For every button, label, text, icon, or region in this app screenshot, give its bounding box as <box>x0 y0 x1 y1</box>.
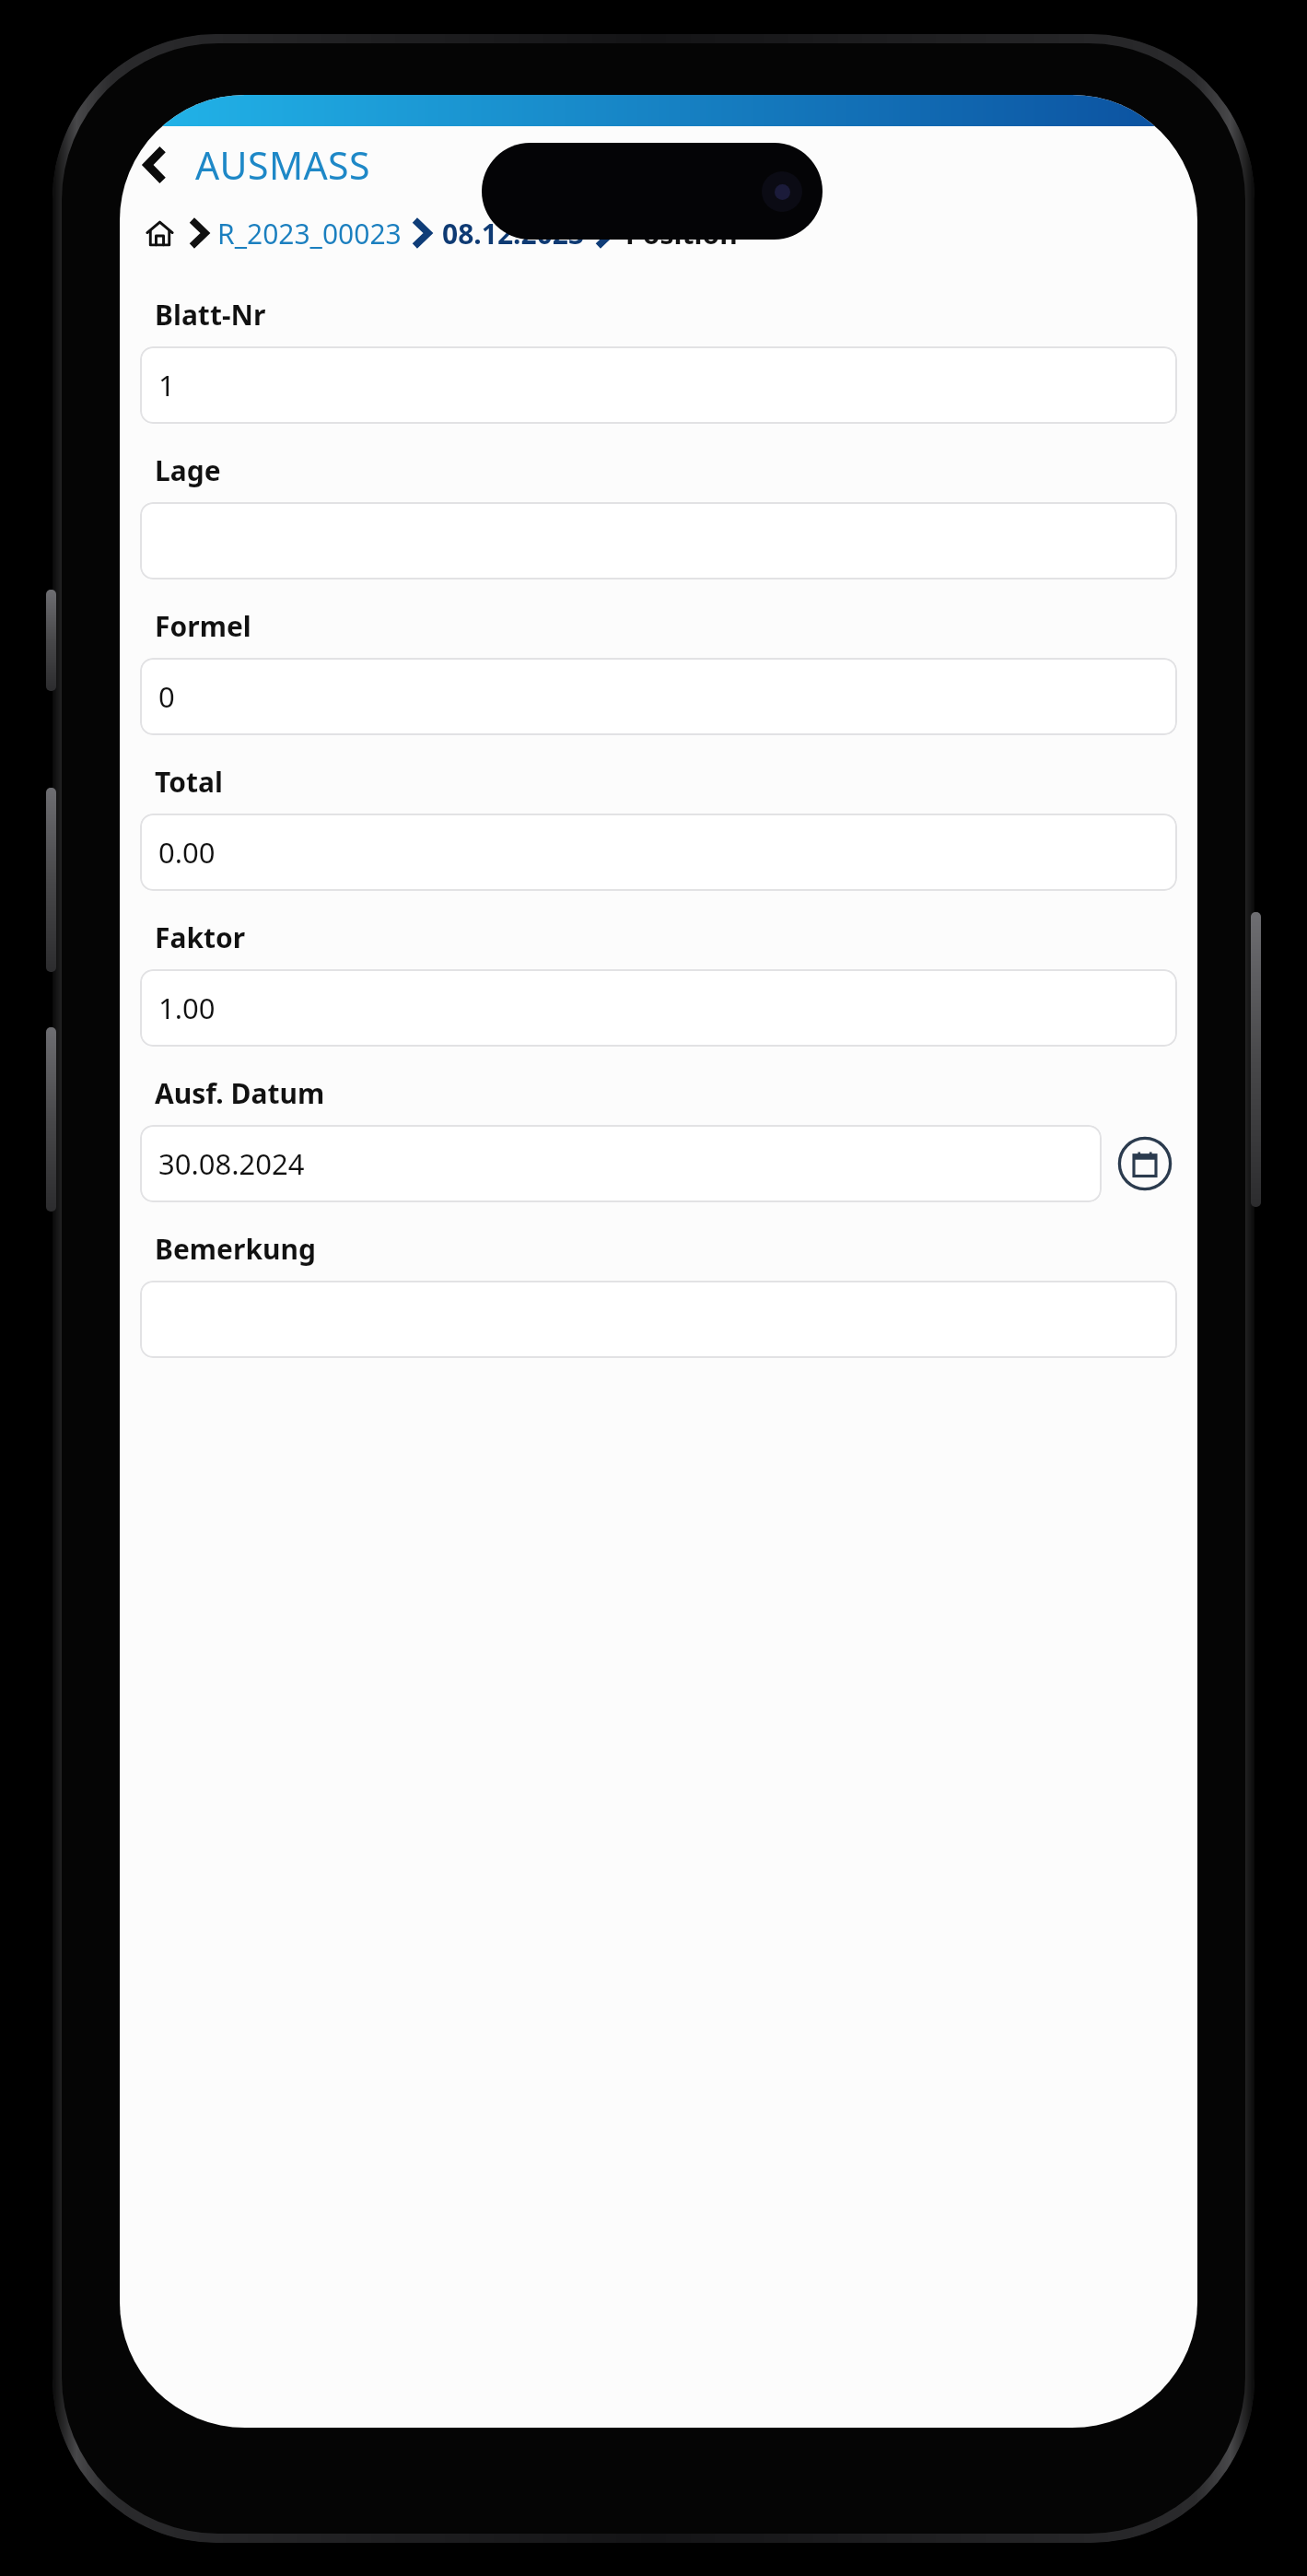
staticText: 1 <box>158 366 175 404</box>
button[interactable]: 1 <box>140 346 1177 424</box>
staticText: 0.00 <box>158 833 216 872</box>
button[interactable]: 1.00 <box>140 969 1177 1047</box>
button[interactable]: Home <box>138 212 181 254</box>
button[interactable]: R_2023_00023 <box>217 215 402 252</box>
button[interactable]: 08.12.2023 <box>442 215 585 252</box>
staticText: R_2023_00023 <box>217 215 402 252</box>
staticText: Ausf. Datum <box>155 1074 325 1112</box>
button[interactable]: 30.08.2024 <box>140 1125 1102 1202</box>
button[interactable]: Position <box>625 215 738 252</box>
button[interactable]: 0.00 <box>140 814 1177 891</box>
staticText: 08.12.2023 <box>442 215 585 252</box>
staticText: Formel <box>155 607 251 645</box>
staticText: Total <box>155 763 223 801</box>
staticText: AUSMASS <box>195 139 370 191</box>
button[interactable]: Pick date <box>1114 1133 1175 1194</box>
button[interactable]: Back <box>120 130 190 200</box>
button[interactable] <box>140 502 1177 580</box>
staticText: 1.00 <box>158 989 216 1027</box>
staticText: Blatt-Nr <box>155 296 266 334</box>
staticText: 0 <box>158 677 175 716</box>
staticText: Bemerkung <box>155 1230 316 1268</box>
staticText: 30.08.2024 <box>158 1144 305 1183</box>
staticText: Faktor <box>155 919 246 956</box>
button[interactable] <box>140 1281 1177 1358</box>
staticText: Position <box>625 215 738 252</box>
button[interactable]: 0 <box>140 658 1177 735</box>
staticText: Lage <box>155 451 221 489</box>
